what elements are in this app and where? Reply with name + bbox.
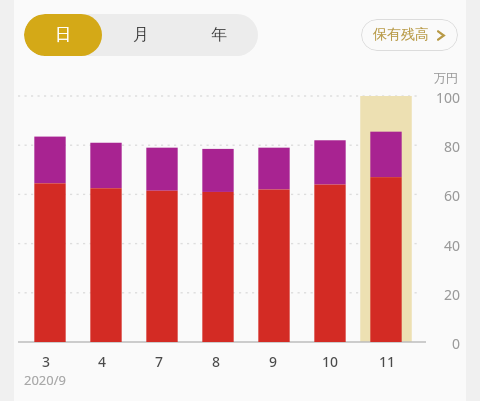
button[interactable]: 保有残高: [361, 19, 458, 51]
staticText: 8: [212, 352, 221, 371]
button[interactable]: 日: [24, 14, 102, 56]
staticText: 2020/9: [24, 371, 67, 389]
staticText: 10: [322, 352, 339, 371]
staticText: 60: [426, 186, 460, 205]
staticText: 9: [269, 352, 278, 371]
staticText: 0: [426, 334, 460, 353]
staticText: 万円: [434, 70, 458, 85]
staticText: 3: [42, 352, 51, 371]
staticText: 20: [426, 285, 460, 304]
button[interactable]: 年: [180, 14, 258, 56]
staticText: 月: [133, 25, 149, 45]
staticText: 11: [379, 352, 396, 371]
staticText: 保有残高: [373, 26, 429, 44]
staticText: 4: [98, 352, 107, 371]
staticText: 100: [426, 88, 460, 107]
staticText: 日: [55, 25, 71, 45]
staticText: 7: [155, 352, 164, 371]
staticText: 40: [426, 236, 460, 255]
staticText: 年: [211, 25, 227, 45]
button[interactable]: 月: [102, 14, 180, 56]
staticText: 80: [426, 137, 460, 156]
